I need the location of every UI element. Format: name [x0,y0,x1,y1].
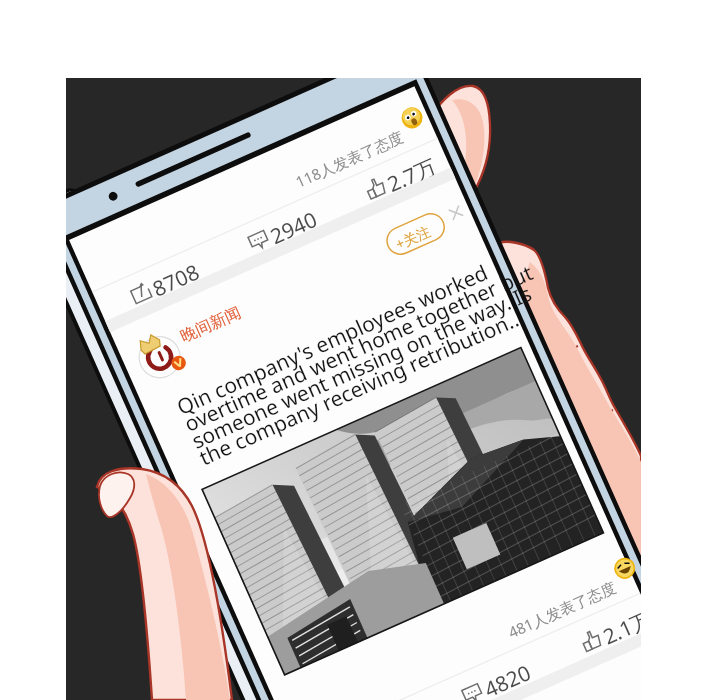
button[interactable]: Comic panel: hand holding phone showing … [0,0,720,700]
